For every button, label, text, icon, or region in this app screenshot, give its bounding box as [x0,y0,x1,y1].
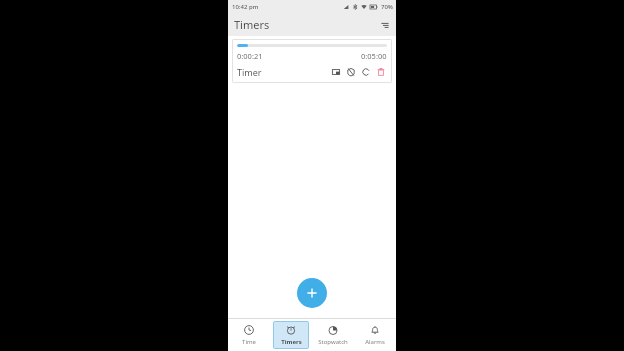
button[interactable]: 0:00:21 [232,39,392,83]
staticText: 70% [381,3,393,11]
staticText: Timers [281,338,302,345]
button[interactable]: Delete [375,66,387,78]
button[interactable]: Time [231,321,267,349]
staticText: Timers [234,17,270,32]
staticText: Stopwatch [318,338,348,345]
staticText: 10:42 pm [232,3,259,11]
button[interactable]: Mute [345,66,357,78]
button[interactable]: Timers [273,321,309,349]
staticText: 0:00:21 [237,51,263,61]
button[interactable]: Alarms [357,321,393,349]
button[interactable]: Stopwatch [315,321,351,349]
button[interactable]: Add timer [297,278,327,308]
staticText: Time [242,338,256,345]
staticText: Alarms [365,338,385,345]
staticText: Timer [237,66,330,78]
button[interactable]: Reset [360,66,372,78]
button[interactable]: Edit label [330,66,342,78]
staticText: 0:05:00 [361,51,387,61]
button[interactable]: More options [377,17,393,33]
